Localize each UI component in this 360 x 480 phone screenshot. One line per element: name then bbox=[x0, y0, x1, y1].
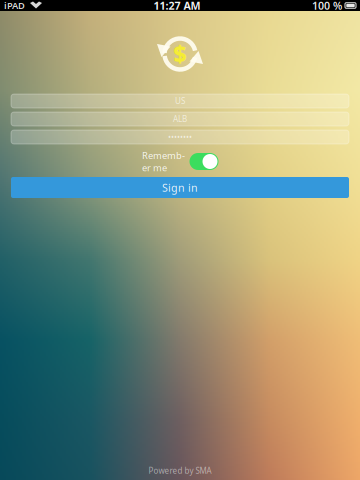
staticText: ALB bbox=[173, 114, 187, 124]
staticText: •••••••• bbox=[168, 132, 192, 142]
staticText: Remember me bbox=[142, 149, 185, 174]
button[interactable]: ALB bbox=[11, 112, 349, 126]
button[interactable]: •••••••• bbox=[11, 130, 349, 144]
staticText: iPAD bbox=[4, 0, 25, 12]
staticText: $ bbox=[173, 39, 186, 69]
button[interactable]: Sign in bbox=[11, 177, 349, 198]
button[interactable]: Remember me bbox=[141, 153, 218, 170]
staticText: Sign in bbox=[162, 180, 198, 195]
staticText: Powered by SMA bbox=[148, 465, 211, 476]
staticText: 100 % bbox=[312, 0, 342, 13]
button[interactable]: US bbox=[11, 94, 349, 108]
staticText: 11:27 AM bbox=[153, 0, 200, 13]
staticText: US bbox=[175, 96, 185, 106]
